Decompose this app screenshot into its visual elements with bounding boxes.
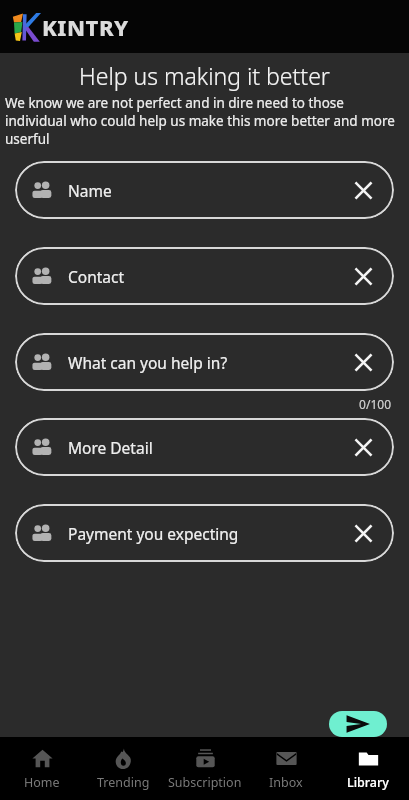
staticText: Home [24,774,60,791]
staticText: We know we are not perfect and in dire n… [5,94,397,148]
button[interactable]: Clear What can you help in? [349,348,377,376]
button[interactable]: Name [15,161,394,219]
button[interactable]: Subscription [165,737,245,800]
button[interactable]: Clear Name [349,176,377,204]
button[interactable]: Contact [15,247,394,305]
button[interactable]: Inbox [246,737,326,800]
button[interactable]: What can you help in? [15,333,394,391]
button[interactable]: Clear Contact [349,262,377,290]
staticText: Payment you expecting [68,523,349,544]
button[interactable]: Library [328,737,408,800]
button[interactable]: Clear More Detail [349,433,377,461]
button[interactable]: More Detail [15,418,394,476]
staticText: Trending [97,774,150,791]
button[interactable]: Home [2,737,82,800]
staticText: Name [68,180,349,201]
staticText: Contact [68,266,349,287]
button[interactable]: Trending [83,737,163,800]
staticText: Library [347,774,389,791]
staticText: KINTRY [42,12,129,42]
staticText: Help us making it better [0,60,409,91]
staticText: More Detail [68,437,349,458]
staticText: 0/100 [0,396,391,412]
button[interactable]: Clear Payment you expecting [349,519,377,547]
staticText: What can you help in? [68,352,349,373]
button[interactable]: Send [329,711,387,737]
button[interactable]: Kintry home [11,11,129,43]
button[interactable]: Payment you expecting [15,504,394,562]
staticText: Subscription [168,774,242,791]
staticText: Inbox [269,774,303,791]
